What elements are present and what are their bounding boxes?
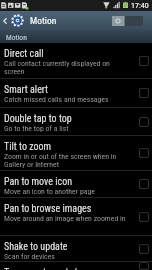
staticText: Double tap to top: [4, 113, 72, 125]
button[interactable]: Pan to browse images checkbox: [136, 198, 152, 235]
staticText: Catch missed calls and messages: [4, 95, 109, 104]
staticText: Call contact currently displayed on scre…: [4, 59, 132, 76]
staticText: Pan to move icon: [4, 176, 73, 188]
staticText: Motion: [30, 15, 57, 26]
staticText: Zoom in or out of the screen when in Gal…: [4, 152, 132, 169]
button[interactable]: Double tap to top checkbox: [136, 108, 152, 135]
button[interactable]: Motion on or off: [112, 11, 143, 30]
button[interactable]: Tilt to zoom: [0, 136, 152, 170]
button[interactable]: Direct call: [0, 43, 152, 78]
staticText: Pan to browse images: [4, 203, 92, 215]
button[interactable]: Pan to move icon checkbox: [136, 171, 152, 197]
staticText: Scan for devices: [4, 252, 55, 260]
staticText: Go to the top of a list: [4, 124, 69, 133]
button[interactable]: Navigate up, Motion: [0, 11, 152, 30]
staticText: Smart alert: [4, 84, 49, 96]
staticText: 17:40: [131, 1, 149, 10]
staticText: Move an icon to another page: [4, 187, 95, 196]
button[interactable]: Turn over to mute/pause: [0, 262, 152, 270]
staticText: Shake to update: [4, 241, 68, 253]
button[interactable]: Smart alert: [0, 79, 152, 107]
staticText: Move around an image when zoomed in: [4, 214, 126, 223]
button[interactable]: Pan to move icon: [0, 171, 152, 197]
button[interactable]: Shake to update checkbox: [136, 236, 152, 261]
staticText: Tilt to zoom: [4, 141, 52, 153]
button[interactable]: Smart alert checkbox: [136, 79, 152, 107]
button[interactable]: Double tap to top: [0, 108, 152, 135]
staticText: Direct call: [4, 48, 44, 60]
button[interactable]: Pan to browse images: [0, 198, 152, 235]
button[interactable]: Shake to update: [0, 236, 152, 261]
button[interactable]: Turn over to mute/pause checkbox: [136, 262, 152, 270]
staticText: Motion: [6, 33, 27, 42]
button[interactable]: Tilt to zoom checkbox: [136, 136, 152, 170]
button[interactable]: Direct call checkbox: [136, 43, 152, 78]
staticText: Turn over to mute/pause: [4, 267, 101, 270]
